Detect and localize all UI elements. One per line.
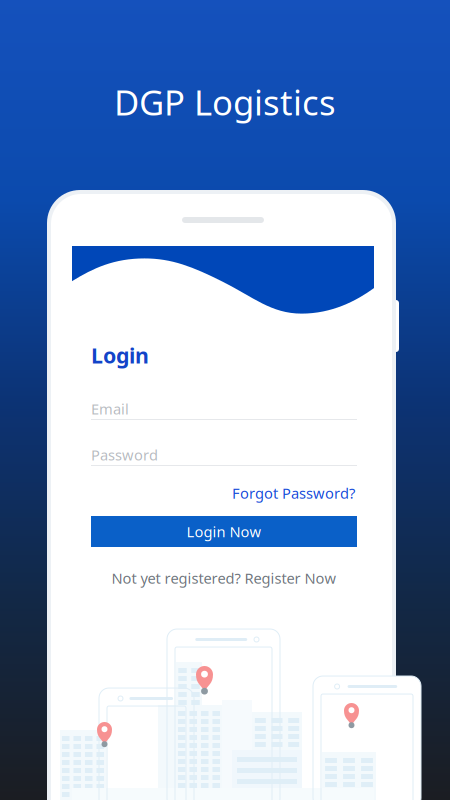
button[interactable]: Not yet registered? Register Now: [91, 569, 357, 587]
button[interactable]: Forgot Password?: [91, 484, 355, 502]
staticText: Email: [91, 399, 129, 418]
staticText: Forgot Password?: [232, 483, 355, 503]
staticText: Login: [91, 341, 149, 369]
staticText: Login Now: [186, 522, 261, 541]
staticText: DGP Logistics: [114, 79, 336, 125]
button[interactable]: Login Now: [91, 516, 357, 547]
staticText: Not yet registered? Register Now: [111, 568, 336, 588]
staticText: Password: [91, 445, 158, 464]
